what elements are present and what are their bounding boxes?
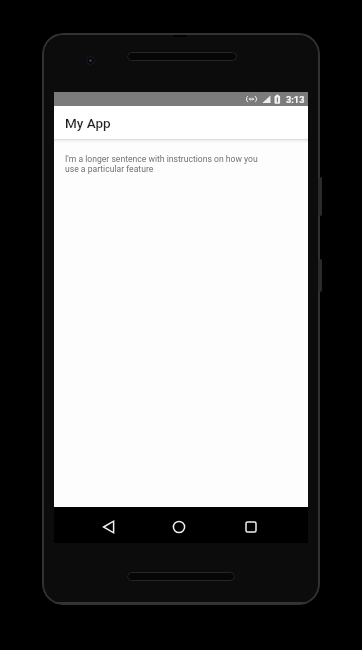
staticText: My App (65, 115, 111, 131)
button[interactable] (165, 514, 192, 540)
staticText: I'm a longer sentence with instructions … (65, 154, 258, 174)
staticText: 3:13 (286, 94, 305, 105)
button[interactable] (237, 514, 264, 540)
button[interactable]: My App (54, 106, 308, 139)
button[interactable] (95, 514, 122, 540)
